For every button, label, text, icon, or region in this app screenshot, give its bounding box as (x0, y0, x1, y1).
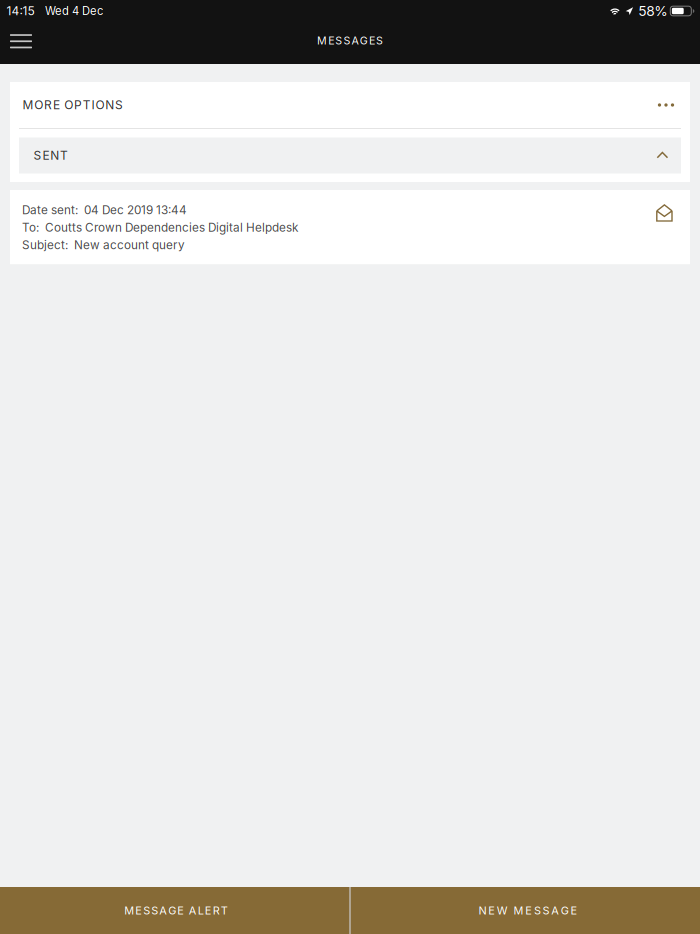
staticText: O (34, 98, 43, 112)
staticText: A (159, 904, 167, 917)
staticText: E (177, 904, 184, 917)
staticText: N (478, 904, 486, 917)
staticText: E (328, 34, 334, 47)
staticText: T (83, 98, 91, 112)
staticText: O (64, 98, 73, 112)
staticText: N (105, 98, 114, 112)
staticText: S (143, 904, 150, 917)
staticText: P (74, 98, 82, 112)
staticText: E (205, 904, 212, 917)
staticText: Subject: New account query (22, 238, 185, 252)
staticText: S (335, 34, 342, 47)
staticText: N (50, 148, 59, 163)
staticText: M (22, 98, 33, 112)
staticText: E (488, 904, 495, 917)
staticText: S (343, 34, 350, 47)
staticText: Wed 4 Dec (45, 4, 103, 18)
button[interactable]: N (351, 887, 700, 934)
staticText: M (124, 904, 134, 917)
staticText: R (213, 904, 220, 917)
staticText: T (221, 904, 228, 917)
staticText: A (352, 34, 359, 47)
staticText: 58% (638, 3, 667, 19)
staticText: S (376, 34, 383, 47)
staticText: I (92, 98, 95, 112)
button[interactable]: Menu (0, 22, 46, 64)
staticText: S (534, 904, 541, 917)
staticText: M (514, 904, 524, 917)
staticText: R (44, 98, 52, 112)
staticText: Date sent: 04 Dec 2019 13:44 (22, 203, 187, 217)
staticText: G (168, 904, 176, 917)
staticText: S (542, 904, 549, 917)
staticText: 14:15 (6, 4, 34, 18)
button[interactable]: M (10, 82, 690, 128)
staticText: E (135, 904, 142, 917)
staticText: G (561, 904, 569, 917)
staticText: S (115, 98, 123, 112)
button[interactable]: M (0, 887, 349, 934)
staticText: W (497, 904, 508, 917)
staticText: E (570, 904, 577, 917)
staticText: G (360, 34, 368, 47)
staticText: To: Coutts Crown Dependencies Digital He… (22, 220, 298, 235)
staticText: E (42, 148, 49, 163)
staticText: E (369, 34, 375, 47)
staticText: A (189, 904, 197, 917)
staticText: E (53, 98, 60, 112)
staticText: O (95, 98, 104, 112)
staticText: E (525, 904, 532, 917)
staticText: S (34, 148, 42, 163)
button[interactable]: S (19, 137, 681, 173)
button[interactable]: Date sent: 04 Dec 2019 13:44 (10, 190, 690, 264)
staticText: M (317, 34, 327, 47)
staticText: S (151, 904, 158, 917)
staticText: T (60, 148, 68, 163)
staticText: L (198, 904, 204, 917)
staticText: A (551, 904, 559, 917)
